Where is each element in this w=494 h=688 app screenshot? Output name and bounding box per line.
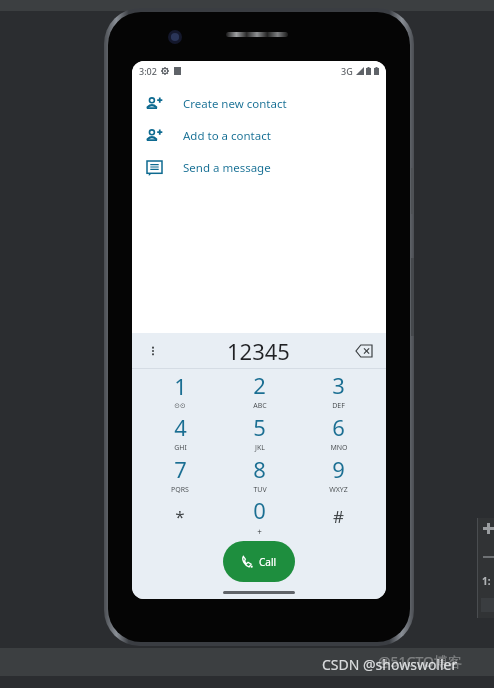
button[interactable]: Send a message: [132, 152, 386, 184]
staticText: Call: [259, 555, 277, 569]
button[interactable]: Call: [223, 541, 295, 582]
staticText: MNO: [330, 443, 348, 453]
staticText: 3G: [341, 65, 353, 77]
button[interactable]: #: [299, 495, 378, 537]
staticText: 0: [253, 495, 266, 525]
button[interactable]: 5: [220, 411, 299, 453]
staticText: Create new contact: [183, 96, 287, 112]
button[interactable]: 1: [140, 369, 220, 411]
staticText: GHI: [174, 443, 187, 453]
staticText: @51CTO博客: [378, 652, 462, 671]
button[interactable]: 3: [299, 369, 378, 411]
staticText: TUV: [253, 485, 267, 495]
staticText: DEF: [332, 401, 345, 411]
staticText: 4: [174, 412, 187, 442]
staticText: ABC: [253, 401, 267, 411]
button[interactable]: *: [140, 495, 220, 537]
button[interactable]: 4: [140, 411, 220, 453]
staticText: 12345: [227, 336, 290, 366]
staticText: 9: [332, 454, 345, 484]
staticText: JKL: [255, 443, 265, 453]
staticText: 3: [332, 370, 345, 400]
button[interactable]: Create new contact: [132, 88, 386, 120]
staticText: ⊙⊙: [174, 402, 186, 410]
button[interactable]: 7: [140, 453, 220, 495]
staticText: 7: [174, 454, 187, 484]
staticText: WXYZ: [329, 485, 348, 495]
staticText: Add to a contact: [183, 128, 271, 144]
staticText: 1:: [482, 574, 491, 588]
staticText: 1: [174, 371, 187, 401]
staticText: #: [333, 505, 344, 528]
staticText: 2: [253, 370, 266, 400]
staticText: 5: [253, 412, 266, 442]
staticText: +: [257, 526, 262, 537]
button[interactable]: Backspace: [352, 339, 376, 363]
staticText: Send a message: [183, 160, 271, 176]
button[interactable]: 9: [299, 453, 378, 495]
button[interactable]: 0: [220, 495, 299, 537]
staticText: *: [175, 505, 185, 528]
staticText: 8: [253, 454, 266, 484]
staticText: CSDN @showswoller: [322, 655, 458, 674]
button[interactable]: Add to a contact: [132, 120, 386, 152]
button[interactable]: 6: [299, 411, 378, 453]
button[interactable]: More options: [142, 340, 164, 362]
staticText: 3:02: [139, 65, 157, 77]
button[interactable]: 2: [220, 369, 299, 411]
button[interactable]: 8: [220, 453, 299, 495]
staticText: 6: [332, 412, 345, 442]
staticText: PQRS: [171, 485, 189, 495]
